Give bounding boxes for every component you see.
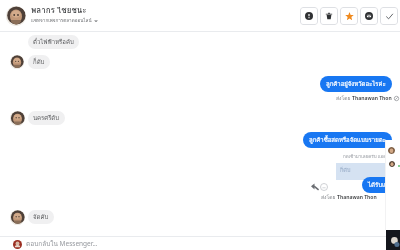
button[interactable]: จัดคับ — [28, 210, 54, 224]
staticText: ตั๋วไฟฟ้าหรือคับ — [33, 37, 74, 47]
button[interactable]: ลูกค้าอยู่จังหวัดอะไรค่ะ — [320, 76, 392, 92]
staticText: จัดคับ — [33, 212, 49, 222]
staticText: Thanawan Thon — [352, 95, 392, 102]
button[interactable]: ตั๋วไฟฟ้าหรือคับ — [28, 35, 79, 49]
staticText: ก็ดับ — [340, 166, 351, 175]
staticText: ตอบกลับใน Messenger... — [26, 239, 98, 249]
button[interactable]: Mark done — [380, 7, 398, 25]
staticText: ลูกค้าอยู่จังหวัดอะไรค่ะ — [326, 79, 386, 89]
staticText: ได้รับแล้ว — [368, 180, 393, 190]
staticText: Thanawan Thon — [337, 194, 377, 201]
staticText: กดเข้ามาเลยครับ แอด — [343, 153, 387, 160]
staticText: ก็ดับ — [33, 57, 45, 67]
staticText: ส่งโดย — [321, 193, 337, 201]
button[interactable]: Media — [386, 230, 400, 250]
staticText: ส่งโดย — [336, 94, 352, 102]
button[interactable]: นครศรีดับ — [28, 111, 65, 125]
button[interactable]: ก็ดับ — [28, 55, 50, 69]
button[interactable]: Star — [340, 7, 358, 25]
button[interactable]: React — [320, 183, 328, 191]
button[interactable]: Reply — [311, 183, 319, 191]
staticText: พลากร ไชยชนะ — [31, 4, 87, 17]
button[interactable]: Delete — [320, 7, 338, 25]
button[interactable]: ก็ดับ — [336, 163, 386, 180]
button[interactable]: ลูกค้าซื้อสดหรือจัดแบบรายตะ — [303, 132, 392, 148]
button[interactable]: Contacts — [386, 140, 400, 230]
staticText: ลูกค้าซื้อสดหรือจัดแบบรายตะ — [309, 135, 386, 145]
button[interactable]: Mark unread — [360, 7, 378, 25]
button[interactable]: Your profile — [13, 240, 22, 249]
button[interactable]: Details — [300, 7, 318, 25]
staticText: นครศรีดับ — [33, 113, 60, 123]
button[interactable]: ได้รับแล้ว — [362, 177, 399, 193]
staticText: แชทจากเพจการตลาดออนไลน์ — [31, 17, 92, 24]
